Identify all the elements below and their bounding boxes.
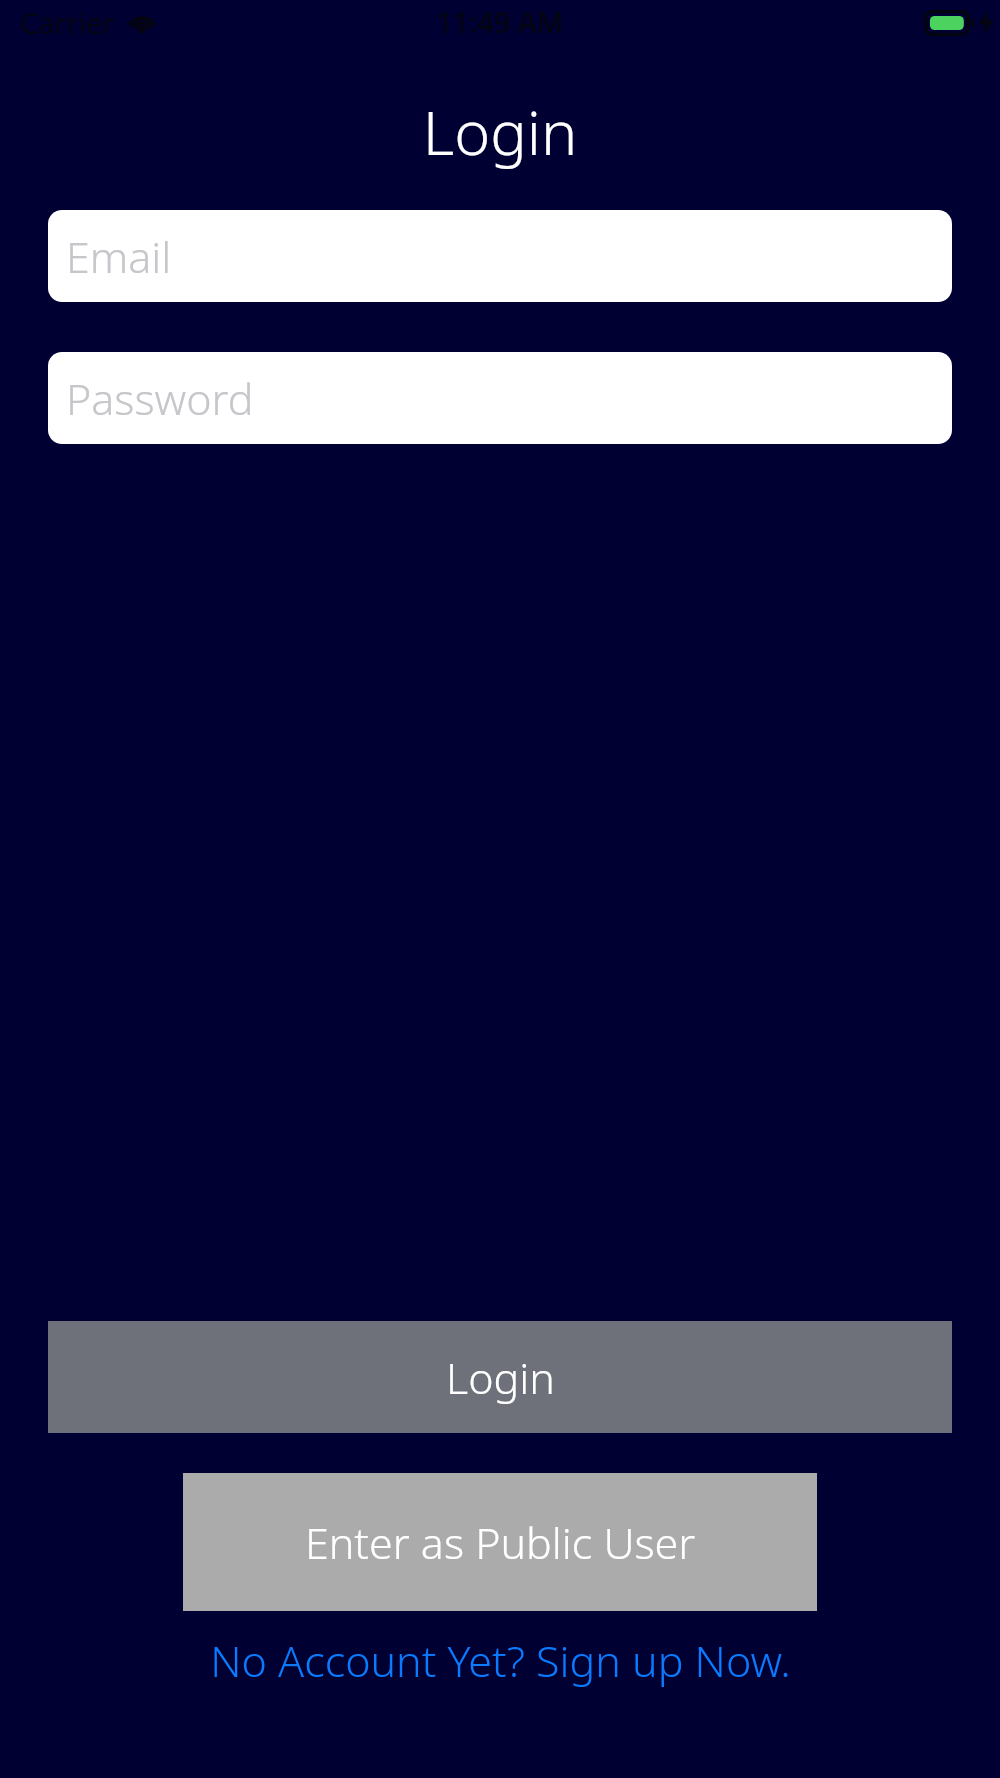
staticText: Login: [0, 90, 1000, 173]
button[interactable]: Login: [48, 1321, 952, 1433]
other: Battery full, charging: [924, 10, 976, 36]
staticText: Carrier: [20, 3, 115, 42]
other: Wi-Fi signal: [127, 12, 157, 34]
staticText: Password: [66, 369, 254, 428]
staticText: No Account Yet? Sign up Now.: [210, 1631, 791, 1690]
staticText: Login: [446, 1348, 555, 1407]
other: Charging: [978, 11, 994, 35]
button[interactable]: Enter as Public User: [183, 1473, 817, 1611]
button[interactable]: Email: [48, 210, 952, 302]
button[interactable]: No Account Yet? Sign up Now.: [0, 1631, 1000, 1690]
staticText: 11:49 AM: [436, 2, 564, 41]
staticText: Email: [66, 227, 172, 286]
button[interactable]: Password: [48, 352, 952, 444]
staticText: Enter as Public User: [305, 1513, 696, 1572]
